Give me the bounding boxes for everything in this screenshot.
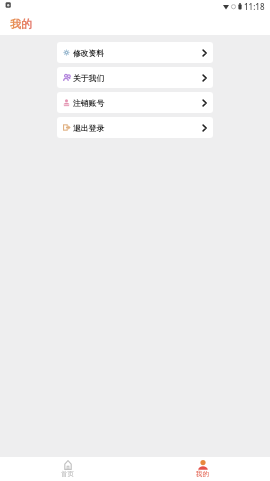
button[interactable]: 修改资料	[57, 42, 213, 63]
button[interactable]: 注销账号	[57, 92, 213, 113]
staticText: 我的	[196, 470, 209, 478]
button[interactable]: 我的	[135, 460, 270, 478]
button[interactable]: 关于我们	[57, 67, 213, 88]
staticText: 11:18	[244, 1, 265, 12]
staticText: 退出登录	[73, 123, 105, 133]
staticText: 修改资料	[73, 48, 105, 58]
button[interactable]: 退出登录	[57, 117, 213, 138]
staticText: 关于我们	[73, 73, 105, 83]
staticText: 我的	[10, 17, 32, 31]
staticText: 注销账号	[73, 98, 105, 108]
staticText: 首页	[61, 470, 74, 478]
button[interactable]: 首页	[0, 460, 135, 478]
